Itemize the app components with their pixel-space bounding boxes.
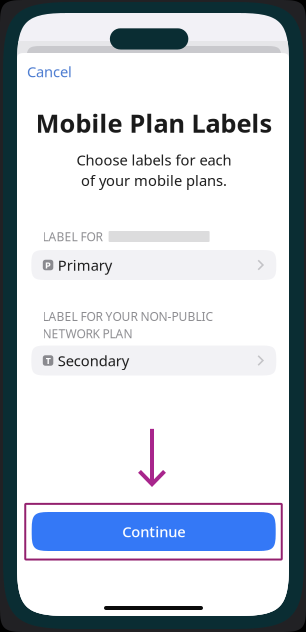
staticText: Continue	[122, 522, 185, 541]
staticText: NETWORK PLAN	[43, 326, 133, 342]
staticText: Choose labels for each	[76, 150, 231, 169]
staticText: of your mobile plans.	[81, 170, 227, 190]
staticText: LABEL FOR	[43, 228, 103, 244]
button[interactable]: Continue	[32, 512, 276, 551]
button[interactable]: P	[31, 250, 276, 280]
staticText: P	[45, 259, 51, 271]
staticText: LABEL FOR YOUR NON-PUBLIC	[43, 308, 214, 324]
staticText: T	[46, 354, 51, 367]
button[interactable]: Cancel	[23, 58, 76, 85]
button[interactable]: T	[31, 345, 276, 375]
staticText: Mobile Plan Labels	[35, 106, 272, 140]
staticText: Primary	[58, 255, 112, 275]
staticText: Secondary	[58, 351, 129, 370]
staticText: Cancel	[27, 62, 72, 81]
